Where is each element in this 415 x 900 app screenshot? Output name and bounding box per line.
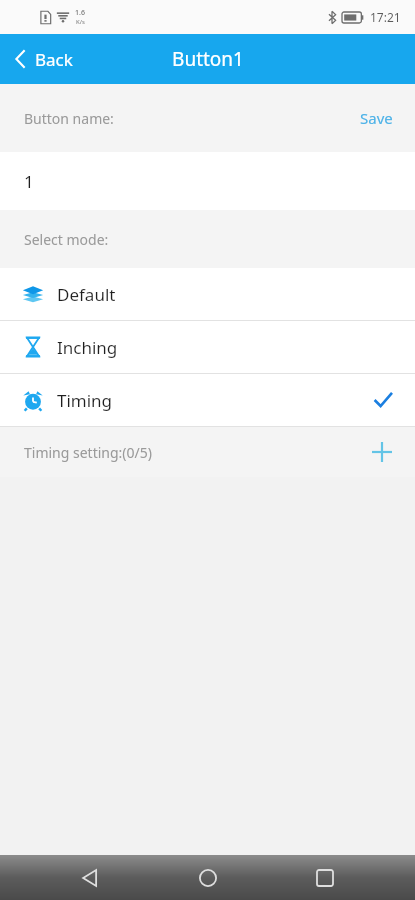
other: Add timing setting	[369, 439, 395, 465]
button[interactable]: Home	[180, 855, 236, 900]
button[interactable]: Inching	[0, 321, 415, 373]
staticText: 1.6	[75, 8, 85, 18]
button[interactable]: Save	[338, 84, 415, 152]
staticText: Timing setting:(0/5)	[24, 443, 152, 462]
button[interactable]: Default	[0, 268, 415, 320]
staticText: Back	[35, 48, 73, 71]
button[interactable]: Timing setting:(0/5)	[0, 427, 415, 477]
button[interactable]: Back	[62, 855, 118, 900]
staticText: 17:21	[370, 9, 401, 25]
staticText: K/s	[76, 18, 85, 26]
button[interactable]: Back	[0, 34, 133, 84]
staticText: Save	[360, 108, 393, 128]
button[interactable]: Recent apps	[297, 855, 353, 900]
button[interactable]: Timing	[0, 374, 415, 426]
staticText: 1	[24, 170, 34, 193]
button[interactable]: 1	[0, 152, 415, 210]
staticText: Button1	[172, 46, 244, 72]
staticText: Button name:	[24, 109, 114, 128]
staticText: Timing	[57, 389, 113, 412]
staticText: Default	[57, 283, 116, 306]
staticText: Select mode:	[24, 230, 109, 249]
staticText: Inching	[57, 336, 118, 359]
